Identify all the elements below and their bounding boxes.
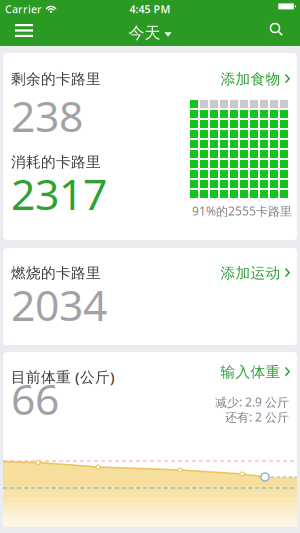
button[interactable]: 今天 — [128, 23, 171, 43]
staticText: Carrier — [5, 2, 42, 16]
staticText: 2034 — [11, 276, 107, 333]
staticText: 238 — [11, 87, 83, 144]
staticText: 消耗的卡路里 — [11, 153, 101, 171]
staticText: 减少: 2.9 公斤 — [215, 394, 289, 410]
staticText: 2317 — [11, 165, 107, 222]
button[interactable] — [0, 24, 300, 42]
staticText: 目前体重 (公斤) — [11, 367, 115, 386]
staticText: 添加食物 — [220, 70, 280, 88]
staticText: 剩余的卡路里 — [11, 70, 101, 88]
staticText: 还有: 2 公斤 — [225, 409, 289, 425]
staticText: 燃烧的卡路里 — [11, 264, 101, 282]
staticText: 4:45 PM — [129, 2, 170, 16]
staticText: 输入体重 — [220, 363, 280, 381]
button[interactable]: 添加食物 — [220, 70, 290, 88]
button[interactable]: 添加运动 — [220, 264, 290, 282]
staticText: 66 — [11, 370, 59, 427]
staticText: 添加运动 — [220, 264, 280, 282]
button[interactable]: 输入体重 — [220, 363, 290, 381]
staticText: 今天 — [128, 23, 160, 43]
button[interactable] — [0, 26, 300, 39]
staticText: 91%的2555卡路里 — [192, 203, 292, 219]
